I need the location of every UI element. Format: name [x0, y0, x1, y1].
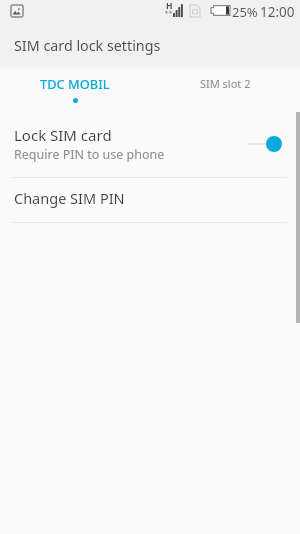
button[interactable]: Lock SIM card — [0, 110, 300, 177]
button[interactable]: Change SIM PIN — [0, 178, 300, 222]
staticText: SIM slot 2 — [200, 76, 251, 91]
staticText: Change SIM PIN — [14, 188, 125, 208]
staticText: 12:00 — [260, 3, 295, 21]
other: Screenshot captured — [10, 4, 24, 18]
staticText: Lock SIM card — [14, 125, 112, 145]
staticText: H — [166, 0, 173, 12]
staticText: 25% — [232, 3, 258, 21]
staticText: SIM card lock settings — [14, 36, 161, 55]
button[interactable]: SIM slot 2 — [150, 66, 300, 110]
button[interactable]: TDC MOBIL — [0, 66, 150, 110]
staticText: Require PIN to use phone — [14, 146, 165, 163]
staticText: TDC MOBIL — [40, 75, 110, 92]
button[interactable]: Lock SIM card, on — [242, 127, 290, 161]
